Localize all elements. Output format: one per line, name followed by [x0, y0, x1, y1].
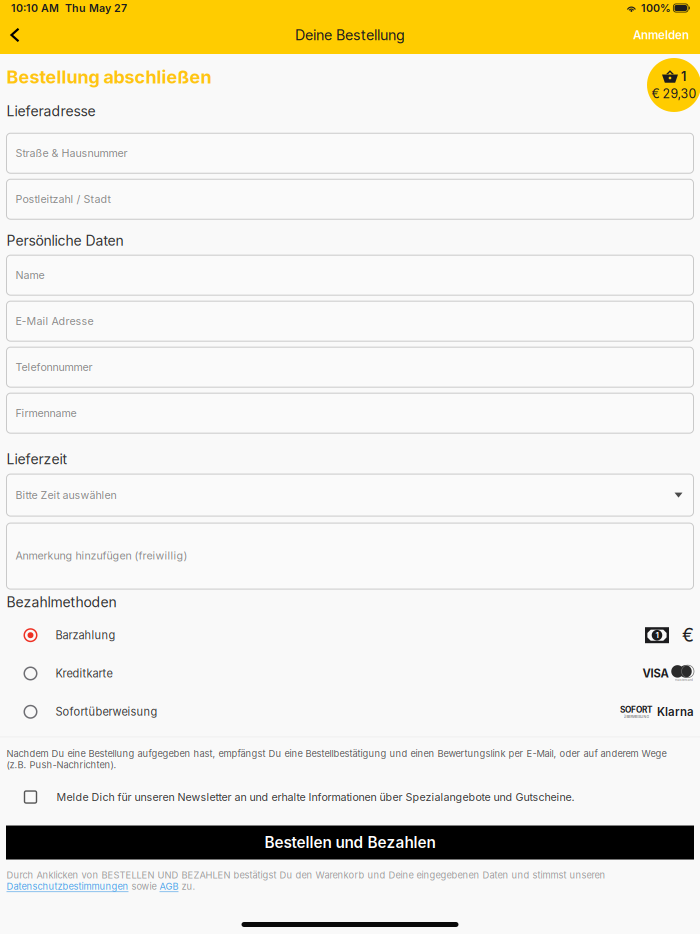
button[interactable]: Sofortüberweisung [0, 693, 700, 731]
button[interactable]: Kreditkarte [0, 654, 700, 693]
staticText: VISA [642, 667, 668, 680]
staticText: Telefonnummer [15, 361, 92, 374]
staticText: Barzahlung [55, 628, 115, 642]
staticText: Firmenname [15, 407, 76, 420]
staticText: Durch Anklicken von BESTELLEN UND BEZAHL… [6, 869, 605, 892]
button[interactable]: Anmelden [623, 16, 700, 54]
staticText: Deine Bestellung [295, 26, 405, 44]
staticText: € 29,30 [651, 86, 696, 101]
button[interactable]: Warenkorb, 1 Artikel, 29,30 € [647, 58, 700, 112]
staticText: Bestellen und Bezahlen [264, 833, 435, 852]
staticText: Bitte Zeit auswählen [15, 489, 116, 501]
staticText: mastercard [675, 678, 693, 682]
staticText: Anmerkung hinzufügen (freiwillig) [15, 549, 187, 562]
staticText: Bestellung abschließen [6, 66, 211, 88]
staticText: Sofortüberweisung [55, 705, 157, 718]
staticText: 1 [655, 630, 658, 640]
button[interactable]: Melde Dich für unseren Newsletter an und… [0, 782, 700, 812]
button[interactable]: Barzahlung [0, 616, 700, 654]
staticText: Anmelden [633, 28, 689, 42]
staticText: Postleitzahl / Stadt [15, 193, 110, 206]
staticText: Melde Dich für unseren Newsletter an und… [56, 791, 574, 803]
staticText: E-Mail Adresse [15, 315, 93, 328]
staticText: 1 [681, 69, 686, 84]
staticText: Straße & Hausnummer [15, 147, 127, 160]
button[interactable]: Bestellen und Bezahlen [6, 825, 694, 859]
staticText: Kreditkarte [55, 667, 112, 680]
staticText: Persönliche Daten [6, 232, 123, 249]
staticText: Thu May 27 [65, 1, 127, 14]
staticText: SOFORT [620, 705, 653, 715]
staticText: Lieferzeit [6, 451, 67, 468]
staticText: € [682, 624, 694, 646]
staticText: Klarna [657, 705, 694, 719]
staticText: 10:10 AM [11, 1, 59, 14]
staticText: Lieferadresse [6, 103, 95, 120]
staticText: Nachdem Du eine Bestellung aufgegeben ha… [6, 748, 666, 770]
staticText: 100% [641, 1, 671, 14]
staticText: Bezahlmethoden [6, 594, 116, 610]
staticText: Name [15, 269, 44, 282]
staticText: ÜBERWEISUNG [623, 715, 649, 719]
button[interactable]: Zurück [0, 16, 32, 54]
